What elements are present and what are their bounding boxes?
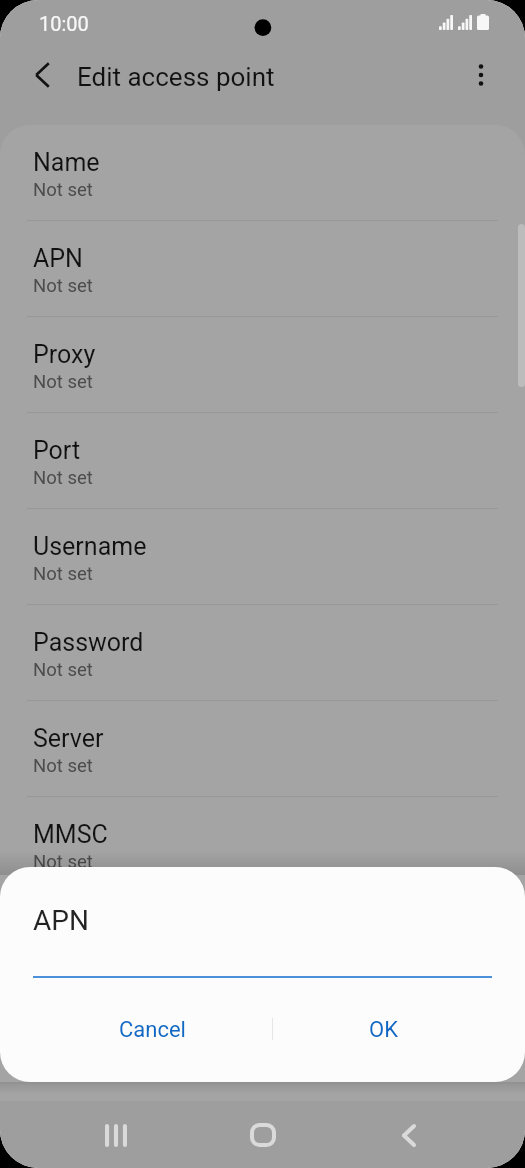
- button[interactable]: Server: [0, 701, 525, 797]
- button[interactable]: Back: [378, 1104, 440, 1166]
- staticText: APN: [33, 244, 83, 273]
- button[interactable]: Username: [0, 509, 525, 605]
- staticText: Not set: [33, 755, 93, 777]
- button[interactable]: APN: [0, 221, 525, 317]
- staticText: Proxy: [33, 340, 96, 369]
- button[interactable]: Password: [0, 605, 525, 701]
- staticText: APN: [33, 904, 89, 937]
- staticText: OK: [369, 1017, 398, 1043]
- staticText: Username: [33, 532, 147, 561]
- staticText: Edit access point: [77, 62, 275, 92]
- staticText: 10:00: [39, 12, 89, 35]
- button[interactable]: More options: [459, 53, 503, 97]
- button[interactable]: Home: [232, 1104, 294, 1166]
- button[interactable]: MMSC: [0, 797, 525, 893]
- staticText: Not set: [33, 371, 93, 393]
- staticText: Not set: [33, 563, 93, 585]
- staticText: Not set: [33, 467, 93, 489]
- staticText: Password: [33, 628, 144, 657]
- button[interactable]: Name: [0, 125, 525, 221]
- button[interactable]: Proxy: [0, 317, 525, 413]
- staticText: Port: [33, 436, 81, 465]
- button[interactable]: Port: [0, 413, 525, 509]
- button[interactable]: OK: [272, 1002, 494, 1058]
- button[interactable]: Cancel: [33, 1002, 272, 1058]
- staticText: Not set: [33, 275, 93, 297]
- button[interactable]: MMS proxy: [0, 893, 525, 989]
- staticText: Name: [33, 148, 100, 177]
- staticText: Not set: [33, 179, 93, 201]
- button[interactable]: Recent apps: [85, 1104, 147, 1166]
- staticText: Cancel: [119, 1017, 186, 1043]
- staticText: MMSC: [33, 820, 108, 849]
- button[interactable]: Navigate up: [20, 53, 64, 97]
- staticText: Server: [33, 724, 104, 753]
- staticText: Not set: [33, 659, 93, 681]
- staticText: MMS proxy: [33, 916, 159, 945]
- staticText: Not set: [33, 851, 93, 873]
